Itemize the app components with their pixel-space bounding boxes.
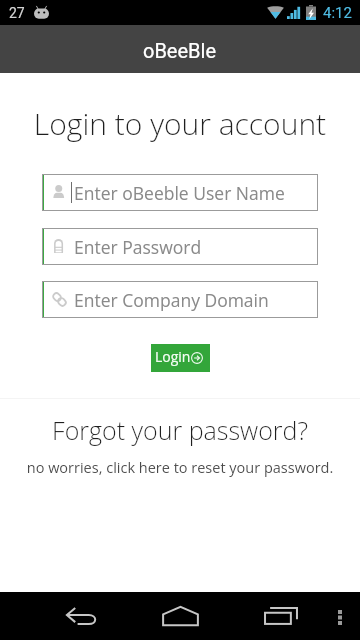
staticText: 27 (9, 5, 25, 21)
staticText: 4:12 (323, 4, 352, 22)
staticText: Enter Company Domain (74, 288, 269, 312)
button[interactable]: More options (322, 592, 358, 640)
button[interactable]: no worries, click here to reset your pas… (0, 458, 360, 478)
button[interactable]: Login (151, 344, 210, 372)
staticText: Forgot your password? (0, 413, 360, 447)
button[interactable]: Back (48, 592, 113, 640)
staticText: Login (155, 347, 191, 366)
button[interactable]: Enter Company Domain (42, 281, 318, 318)
staticText: Login to your account (0, 103, 360, 144)
staticText: oBeeBle (143, 39, 217, 62)
button[interactable]: Recent apps (249, 592, 313, 640)
staticText: Enter oBeeble User Name (74, 181, 285, 205)
button[interactable]: Home (148, 592, 212, 640)
staticText: Enter Password (74, 235, 202, 259)
button[interactable]: Enter Password (42, 228, 318, 265)
button[interactable]: Enter oBeeble User Name (42, 174, 318, 211)
